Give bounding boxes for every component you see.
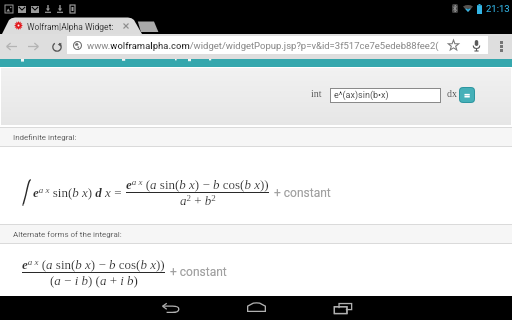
- button[interactable]: Forward: [25, 38, 42, 55]
- staticText: Wolfram|Alpha Widget:: [27, 22, 114, 32]
- button[interactable]: Home: [234, 296, 278, 320]
- staticText: ea x (a sin(b x) − b cos(b x)): [22, 257, 165, 272]
- staticText: Alternate forms of the integral:: [13, 230, 122, 239]
- staticText: Indefinite integral:: [13, 133, 77, 142]
- staticText: e^(ax)sin(b•x): [334, 90, 389, 101]
- button[interactable]: [136, 17, 160, 34]
- staticText: + constant: [170, 265, 227, 279]
- button[interactable]: Close tab: [117, 17, 135, 34]
- staticText: 21:13: [486, 3, 510, 14]
- button[interactable]: More options: [491, 36, 512, 57]
- button[interactable]: Voice search: [465, 36, 487, 54]
- staticText: int: [311, 88, 322, 99]
- button[interactable]: Back: [148, 296, 192, 320]
- staticText: ea x (a sin(b x) − b cos(b x)): [126, 177, 269, 192]
- button[interactable]: Compute: [460, 88, 474, 102]
- staticText: =: [464, 89, 471, 102]
- button[interactable]: Back: [3, 38, 20, 55]
- button[interactable]: e^(ax)sin(b•x): [331, 89, 440, 102]
- button[interactable]: Wolfram|Alpha Widget:: [2, 17, 142, 34]
- button[interactable]: Recent apps: [321, 296, 365, 320]
- staticText: www.wolframalpha.com/widget/widgetPopup.…: [87, 40, 439, 51]
- button[interactable]: www.wolframalpha.com/widget/widgetPopup.…: [67, 36, 488, 54]
- staticText: + constant: [274, 186, 331, 200]
- button[interactable]: Reload: [48, 38, 65, 55]
- staticText: a2 + b2: [180, 193, 216, 208]
- staticText: ea x sin(b x) d x =: [33, 185, 122, 200]
- button[interactable]: Bookmark: [442, 36, 464, 54]
- staticText: (a − i b) (a + i b): [50, 273, 138, 287]
- staticText: dx: [447, 88, 457, 99]
